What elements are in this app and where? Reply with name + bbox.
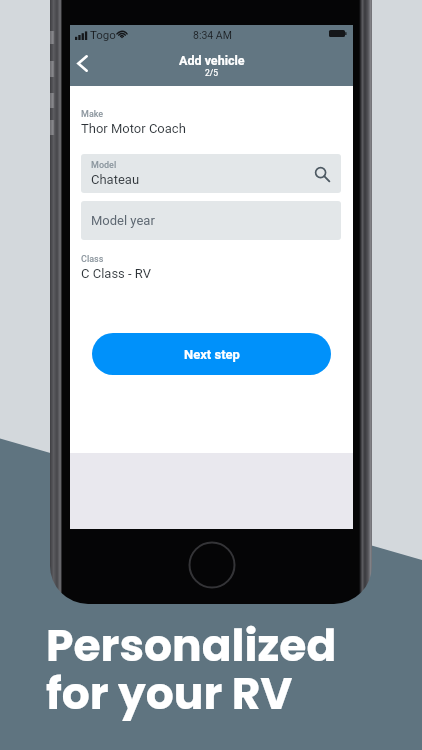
staticText: Thor Motor Coach	[81, 121, 186, 136]
staticText: Make	[81, 109, 104, 120]
staticText: Personalized	[46, 615, 337, 677]
staticText: Next step	[184, 347, 240, 362]
button[interactable]: Model year	[81, 201, 341, 240]
staticText: 2/5	[205, 68, 219, 78]
staticText: Model year	[91, 213, 155, 228]
staticText: Togo	[90, 28, 116, 41]
staticText: Add vehicle	[179, 53, 245, 68]
button[interactable]: Model	[81, 154, 341, 193]
staticText: C Class - RV	[81, 266, 152, 281]
staticText: 8:34 AM	[193, 29, 232, 41]
button[interactable]: Next step	[92, 333, 331, 375]
staticText: Chateau	[91, 172, 140, 187]
staticText: Model	[91, 160, 117, 171]
staticText: Class	[81, 254, 104, 265]
other: Search	[315, 167, 331, 183]
staticText: for your RV	[46, 663, 293, 725]
button[interactable]: Back	[70, 48, 94, 78]
